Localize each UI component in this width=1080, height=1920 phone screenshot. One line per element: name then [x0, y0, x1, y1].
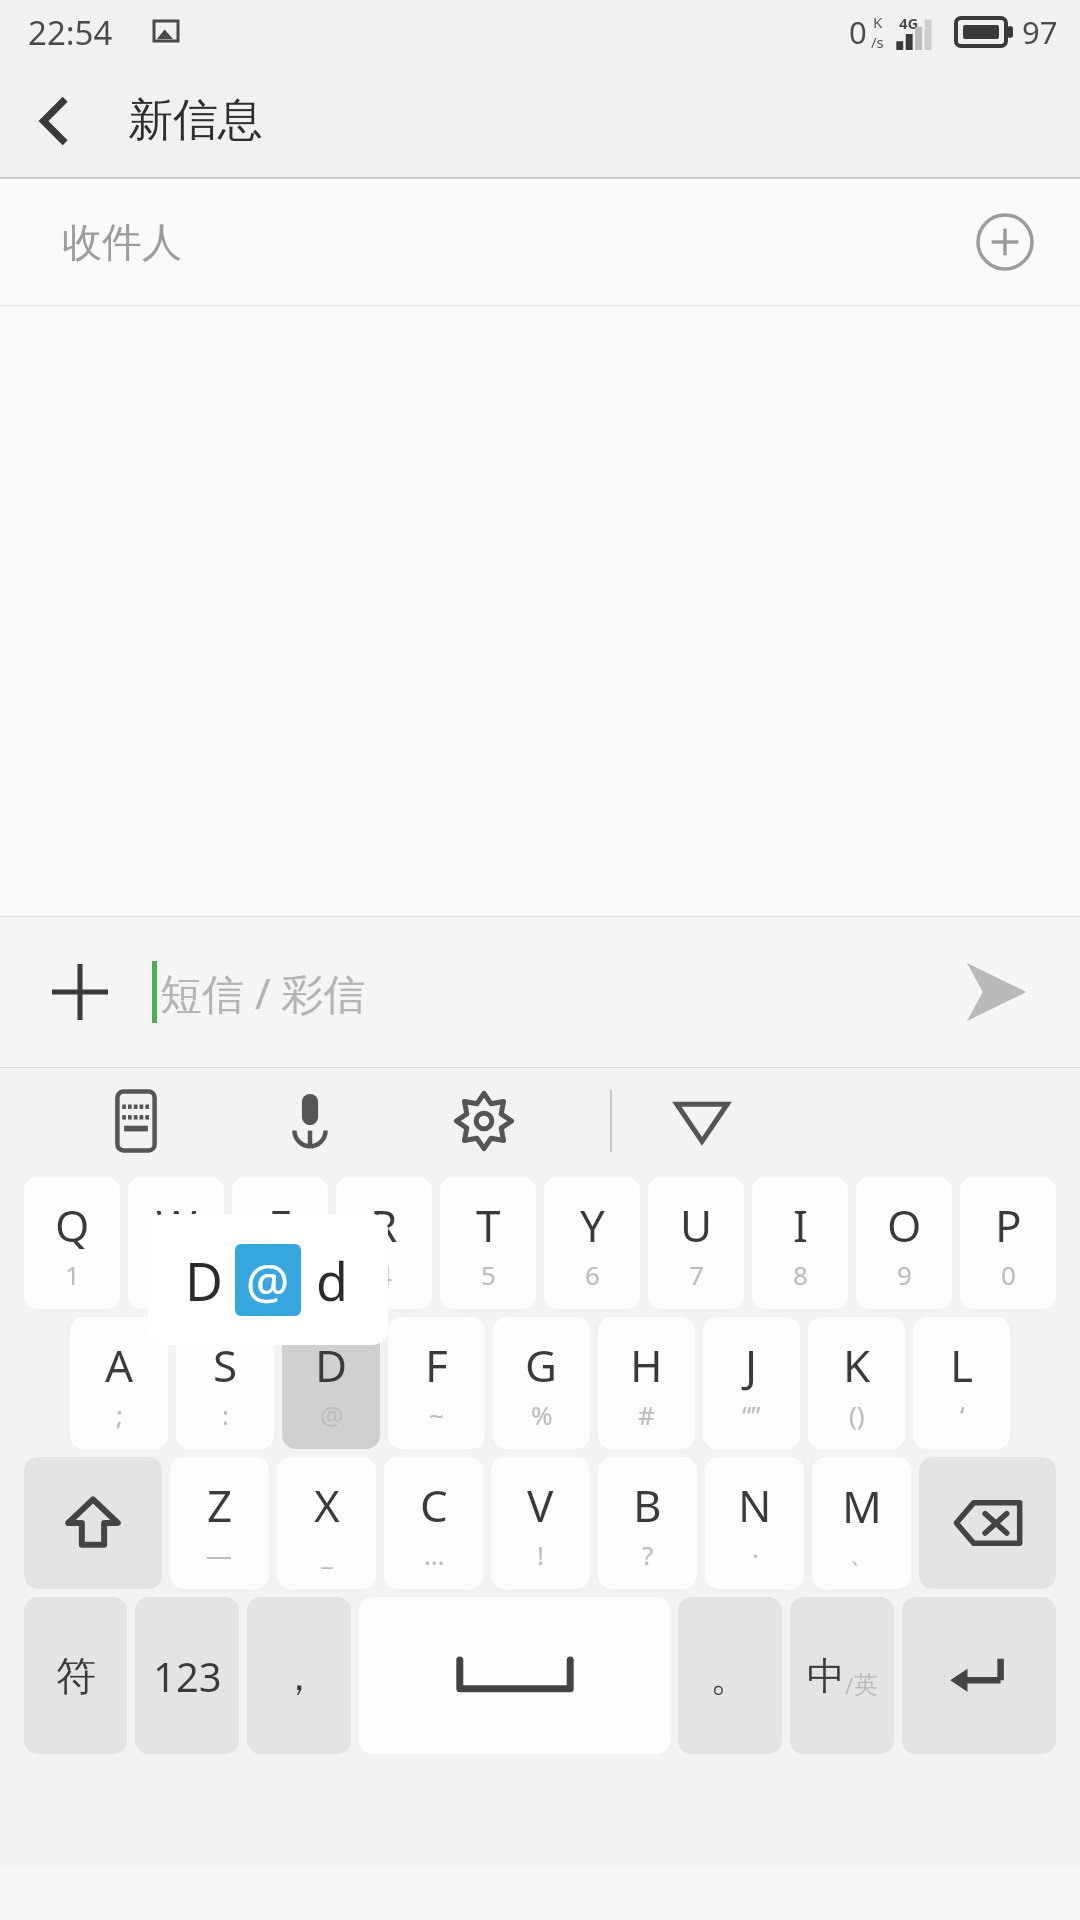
staticText: 8 [793, 1257, 808, 1292]
button[interactable]: L [913, 1317, 1010, 1449]
staticText: % [531, 1397, 553, 1432]
staticText: () [849, 1397, 865, 1432]
staticText: 0 [1001, 1257, 1016, 1292]
staticText: N [738, 1475, 772, 1535]
staticText: C [420, 1475, 448, 1535]
staticText: ， [279, 1651, 319, 1701]
button[interactable]: Add recipient [966, 203, 1044, 281]
staticText: A [105, 1335, 134, 1395]
staticText: 9 [897, 1257, 912, 1292]
staticText: 中 [807, 1652, 845, 1700]
button[interactable]: Y [544, 1177, 640, 1309]
staticText: @ [320, 1397, 344, 1432]
staticText: W [156, 1195, 197, 1255]
button[interactable]: W [128, 1177, 224, 1309]
staticText: 、 [849, 1538, 875, 1571]
staticText: D [315, 1335, 348, 1395]
button[interactable]: O [856, 1177, 952, 1309]
button[interactable]: X [277, 1457, 376, 1589]
button[interactable]: @ [235, 1244, 301, 1316]
button[interactable] [24, 1457, 162, 1589]
button[interactable]: Send [946, 942, 1046, 1042]
staticText: 6 [585, 1257, 600, 1292]
staticText: : [222, 1397, 229, 1432]
staticText: J [745, 1335, 758, 1395]
button[interactable]: J [703, 1317, 800, 1449]
staticText: T [476, 1195, 501, 1255]
staticText: ~ [429, 1397, 444, 1432]
staticText: 123 [153, 1649, 222, 1703]
staticText: H [630, 1335, 663, 1395]
button[interactable]: Keyboard layout [88, 1073, 184, 1169]
staticText: B [633, 1475, 662, 1535]
button[interactable] [359, 1597, 670, 1754]
button[interactable]: G [493, 1317, 590, 1449]
staticText: _ [321, 1537, 333, 1572]
staticText: · [752, 1537, 759, 1572]
staticText: “” [742, 1397, 761, 1432]
button[interactable]: U [648, 1177, 744, 1309]
staticText: ; [116, 1397, 123, 1432]
button[interactable]: Voice input [262, 1073, 358, 1169]
staticText: 22:54 [28, 10, 113, 55]
button[interactable]: S [176, 1317, 274, 1449]
button[interactable]: Settings [436, 1073, 532, 1169]
button[interactable]: Add attachment [34, 946, 126, 1038]
staticText: 0 [849, 11, 867, 53]
staticText: 。 [710, 1651, 750, 1701]
staticText: U [680, 1195, 713, 1255]
button[interactable]: Z [170, 1457, 269, 1589]
button[interactable]: 123 [135, 1597, 239, 1754]
staticText: 4 [377, 1257, 392, 1292]
button[interactable]: 收件人 [0, 179, 1080, 305]
staticText: S [213, 1335, 238, 1395]
button[interactable]: E [232, 1177, 328, 1309]
button[interactable]: ， [247, 1597, 351, 1754]
button[interactable]: P [960, 1177, 1056, 1309]
staticText: d [301, 1245, 363, 1316]
staticText: 4G [899, 13, 919, 33]
staticText: / [845, 1670, 854, 1700]
staticText: X [314, 1475, 340, 1535]
button[interactable]: C [384, 1457, 483, 1589]
staticText: 1 [65, 1257, 80, 1292]
staticText: 英 [854, 1670, 878, 1700]
staticText: 5 [481, 1257, 496, 1292]
button[interactable]: M [812, 1457, 911, 1589]
staticText: ! [537, 1537, 544, 1572]
button[interactable]: A [70, 1317, 168, 1449]
button[interactable]: 中 [790, 1597, 894, 1754]
button[interactable]: V [491, 1457, 590, 1589]
button[interactable]: H [598, 1317, 695, 1449]
staticText: 符 [56, 1651, 96, 1701]
staticText: G [525, 1335, 558, 1395]
staticText: /s [871, 32, 884, 52]
staticText: P [995, 1195, 1022, 1255]
staticText: O [887, 1195, 922, 1255]
staticText: @ [246, 1248, 290, 1313]
staticText: K [873, 12, 883, 32]
button[interactable]: Back [0, 66, 110, 176]
button[interactable]: B [598, 1457, 697, 1589]
staticText: 新信息 [128, 92, 263, 149]
button[interactable]: Hide keyboard [654, 1073, 750, 1169]
button[interactable]: 。 [678, 1597, 782, 1754]
button[interactable]: D [282, 1317, 380, 1449]
staticText: F [425, 1335, 448, 1395]
button[interactable]: K [808, 1317, 905, 1449]
button[interactable]: Q [24, 1177, 120, 1309]
button[interactable]: F [388, 1317, 485, 1449]
button[interactable]: I [752, 1177, 848, 1309]
button[interactable]: 符 [24, 1597, 127, 1754]
staticText: 收件人 [62, 217, 182, 267]
staticText: ? [642, 1537, 654, 1572]
button[interactable]: N [705, 1457, 804, 1589]
button[interactable] [902, 1597, 1056, 1754]
button[interactable]: T [440, 1177, 536, 1309]
staticText: E [268, 1195, 293, 1255]
button[interactable] [919, 1457, 1056, 1589]
button[interactable]: R [336, 1177, 432, 1309]
staticText: ‘ [960, 1397, 965, 1432]
staticText: R [370, 1195, 398, 1255]
